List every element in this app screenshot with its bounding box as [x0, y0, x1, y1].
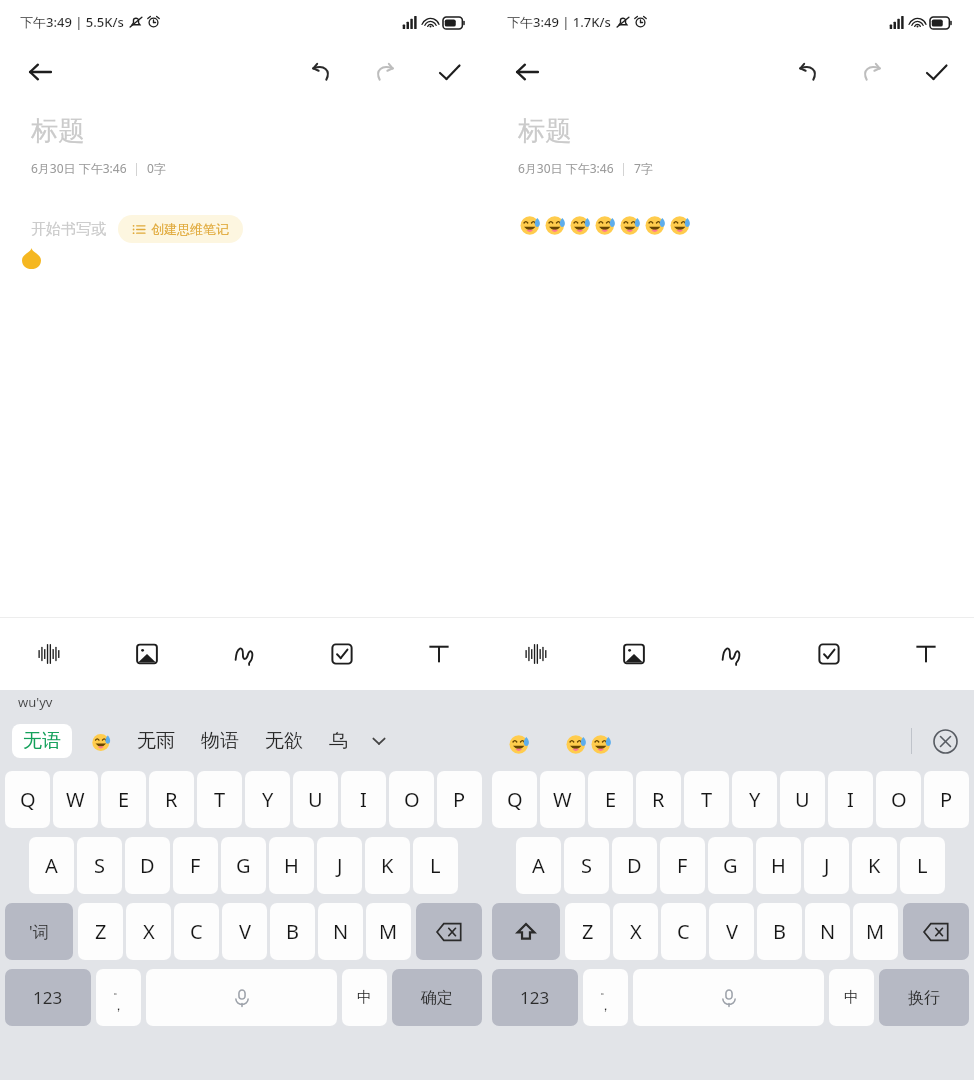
button[interactable]: Confirm [392, 969, 482, 1026]
button[interactable]: More candidates [366, 728, 392, 754]
button[interactable]: H [269, 837, 314, 894]
button[interactable]: C [661, 903, 706, 960]
button[interactable]: Back [18, 50, 62, 94]
button[interactable]: J [804, 837, 849, 894]
button[interactable] [564, 731, 614, 756]
button[interactable]: 无雨 [135, 729, 177, 753]
button[interactable]: O [876, 771, 921, 828]
button[interactable]: D [612, 837, 657, 894]
button[interactable]: F [173, 837, 218, 894]
staticText: | [614, 160, 634, 176]
button[interactable]: V [222, 903, 267, 960]
button[interactable]: U [780, 771, 825, 828]
button[interactable]: W [53, 771, 98, 828]
button[interactable]: I [341, 771, 386, 828]
button[interactable]: Image [98, 618, 196, 690]
button[interactable]: W [540, 771, 585, 828]
button[interactable]: F [660, 837, 705, 894]
staticText: 下午3:49 | 5.5K/s [20, 13, 124, 31]
button[interactable]: C [174, 903, 219, 960]
button[interactable]: A [516, 837, 561, 894]
button[interactable]: Chinese English toggle [342, 969, 387, 1026]
button[interactable]: H [756, 837, 801, 894]
button[interactable]: Z [565, 903, 610, 960]
button[interactable]: Handwriting [196, 618, 293, 690]
button[interactable]: Shift [492, 903, 560, 960]
button[interactable]: Punctuation [96, 969, 141, 1026]
button[interactable]: R [636, 771, 681, 828]
button[interactable]: G [708, 837, 753, 894]
button[interactable]: Backspace [416, 903, 482, 960]
button[interactable]: Text style [390, 618, 487, 690]
button[interactable]: Done [427, 50, 471, 94]
button[interactable]: Space / Voice input [146, 969, 337, 1026]
button[interactable]: I [828, 771, 873, 828]
button[interactable]: Numbers [492, 969, 578, 1026]
button[interactable]: G [221, 837, 266, 894]
button[interactable]: 物语 [199, 729, 241, 753]
button[interactable]: X [613, 903, 658, 960]
button[interactable]: Space / Voice input [633, 969, 824, 1026]
button[interactable]: O [389, 771, 434, 828]
button[interactable]: M [853, 903, 898, 960]
button[interactable]: A [29, 837, 74, 894]
button[interactable]: Checklist [293, 618, 390, 690]
button[interactable]: Redo [850, 50, 894, 94]
button[interactable]: Backspace [903, 903, 969, 960]
button[interactable]: S [564, 837, 609, 894]
button[interactable]: Undo [299, 50, 343, 94]
button[interactable]: L [900, 837, 945, 894]
button[interactable]: Undo [786, 50, 830, 94]
button[interactable]: E [101, 771, 146, 828]
button[interactable]: J [317, 837, 362, 894]
button[interactable]: N [805, 903, 850, 960]
button[interactable]: M [366, 903, 411, 960]
button[interactable]: K [365, 837, 410, 894]
button[interactable]: P [437, 771, 482, 828]
button[interactable]: Checklist [780, 618, 877, 690]
button[interactable]: 无欲 [263, 729, 305, 753]
button[interactable]: Y [245, 771, 290, 828]
button[interactable]: D [125, 837, 170, 894]
button[interactable]: L [413, 837, 458, 894]
button[interactable]: U [293, 771, 338, 828]
button[interactable]: Emoji candidate [90, 730, 113, 753]
button[interactable]: R [149, 771, 194, 828]
button[interactable]: V [709, 903, 754, 960]
button[interactable]: Q [492, 771, 537, 828]
button[interactable]: Audio [487, 618, 585, 690]
button[interactable]: T [684, 771, 729, 828]
button[interactable]: 乌 [327, 729, 350, 753]
button[interactable]: Word mode [5, 903, 73, 960]
button[interactable]: Y [732, 771, 777, 828]
button[interactable]: 无语 [12, 724, 72, 758]
button[interactable]: 创建思维笔记 [118, 215, 243, 243]
button[interactable]: Punctuation [583, 969, 628, 1026]
button[interactable]: E [588, 771, 633, 828]
button[interactable]: Image [585, 618, 683, 690]
button[interactable]: X [126, 903, 171, 960]
button[interactable]: S [77, 837, 122, 894]
button[interactable]: Back [505, 50, 549, 94]
button[interactable]: New line [879, 969, 969, 1026]
button[interactable]: B [270, 903, 315, 960]
staticText: D [627, 852, 642, 879]
button[interactable]: B [757, 903, 802, 960]
button[interactable]: K [852, 837, 897, 894]
button[interactable]: Emoji [507, 731, 532, 756]
button[interactable]: Redo [363, 50, 407, 94]
staticText: L [430, 852, 441, 879]
button[interactable]: Done [914, 50, 958, 94]
button[interactable]: T [197, 771, 242, 828]
button[interactable]: N [318, 903, 363, 960]
staticText: F [677, 852, 688, 879]
button[interactable]: Audio [0, 618, 98, 690]
button[interactable]: Handwriting [683, 618, 780, 690]
button[interactable]: Numbers [5, 969, 91, 1026]
button[interactable]: Q [5, 771, 50, 828]
button[interactable]: Close [928, 724, 962, 758]
button[interactable]: P [924, 771, 969, 828]
button[interactable]: Chinese English toggle [829, 969, 874, 1026]
button[interactable]: Z [78, 903, 123, 960]
button[interactable]: Text style [877, 618, 974, 690]
